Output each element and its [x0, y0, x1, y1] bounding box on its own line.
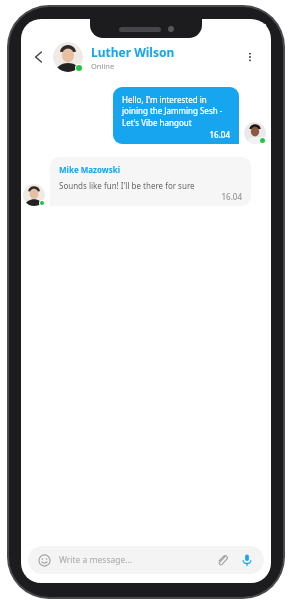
button[interactable]: Emoji: [36, 552, 52, 568]
button[interactable]: Emoji: [28, 546, 264, 574]
staticText: Mike Mazowski: [59, 164, 121, 175]
staticText: 08:28: [27, 21, 51, 33]
button[interactable]: More options: [238, 45, 262, 69]
staticText: Online: [91, 61, 115, 71]
staticText: Write a message...: [59, 554, 213, 566]
button[interactable]: Voice message: [238, 551, 256, 569]
button[interactable]: Mike Mazowski: [23, 157, 251, 206]
button[interactable]: Attach file: [213, 551, 231, 569]
staticText: Luther Wilson: [91, 44, 175, 60]
button[interactable]: Luther Wilson: [91, 44, 238, 71]
staticText: 16.04: [59, 191, 242, 202]
button[interactable]: Back: [26, 44, 52, 70]
button[interactable]: Hello, I'm interested in joining the Jam…: [37, 87, 266, 144]
staticText: Hello, I'm interested in joining the Jam…: [122, 94, 230, 129]
staticText: 16.04: [122, 129, 230, 140]
staticText: Sounds like fun! I'll be there for sure: [59, 180, 195, 191]
